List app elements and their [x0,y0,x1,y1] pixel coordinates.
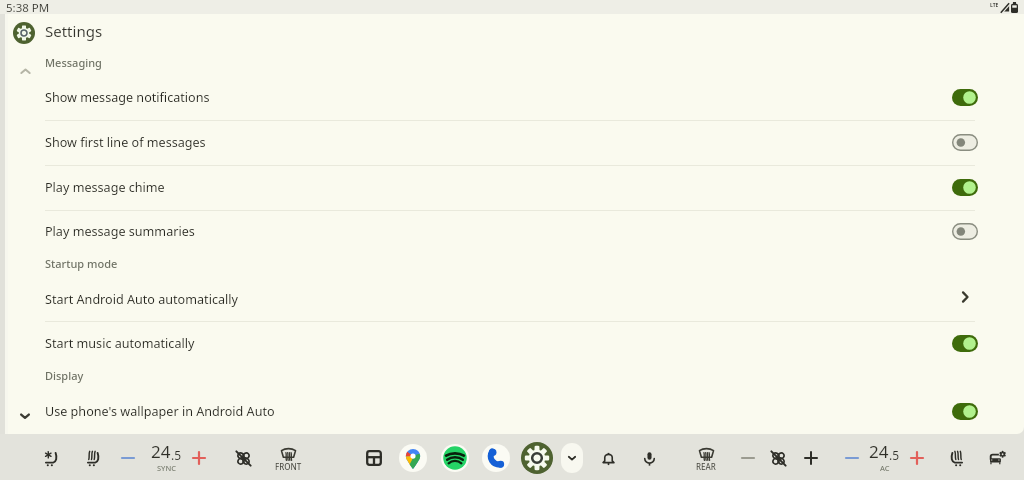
button[interactable]: Car settings [984,445,1010,471]
button[interactable]: Phone [482,444,510,472]
button[interactable]: Switch on [946,83,983,111]
staticText: Start music automatically [45,335,195,352]
staticText: 24 [151,440,171,463]
button[interactable]: Increase temperature left [181,445,217,471]
button[interactable]: Play message chime [0,167,1024,207]
button[interactable]: Defrost FRONT [271,443,305,475]
button[interactable]: Open [950,282,980,312]
staticText: Use phone's wallpaper in Android Auto [45,403,275,420]
button[interactable]: Seat cooling [37,445,63,471]
button[interactable]: Increase temperature right [899,445,935,471]
button[interactable]: Decrease fan [730,445,766,471]
button[interactable]: More apps [561,443,583,473]
staticText: Messaging [45,55,102,70]
staticText: Startup mode [45,256,118,271]
staticText: Play message summaries [45,223,195,240]
button[interactable]: Fan off left [230,445,256,471]
button[interactable]: Increase fan [793,445,829,471]
staticText: SYNC [157,463,177,473]
button[interactable]: Scroll up [15,61,35,81]
staticText: Start Android Auto automatically [45,291,238,308]
button[interactable]: Scroll down [15,406,35,426]
button[interactable]: Seat heating right [944,445,970,471]
staticText: .5 [171,447,182,463]
button[interactable]: Fan off right [765,445,791,471]
button[interactable]: Use phone's wallpaper in Android Auto [0,391,1024,431]
staticText: .5 [889,447,900,463]
staticText: REAR [696,461,716,472]
staticText: LTE [990,2,999,9]
button[interactable]: Maps [399,444,427,472]
button[interactable]: Switch off [946,128,983,156]
button[interactable]: Notifications [595,445,621,471]
staticText: Settings [45,21,103,41]
staticText: Show first line of messages [45,134,206,151]
staticText: 24 [869,440,889,463]
button[interactable]: 24 [144,440,188,476]
button[interactable]: Microphone [636,445,662,471]
staticText: AC [880,463,890,473]
staticText: 5:38 PM [6,0,50,14]
button[interactable]: Dashboard [348,445,400,471]
button[interactable]: Play message summaries [0,211,1024,251]
staticText: FRONT [275,461,302,472]
staticText: Play message chime [45,179,165,196]
button[interactable]: Show message notifications [0,77,1024,117]
button[interactable]: Decrease temperature right [834,445,870,471]
button[interactable]: 24 [862,440,906,476]
button[interactable]: Start music automatically [0,323,1024,363]
staticText: Display [45,368,84,383]
button[interactable]: Settings app icon [13,22,35,44]
button[interactable]: Decrease temperature left [110,445,146,471]
staticText: Show message notifications [45,89,210,106]
button[interactable]: Switch off [946,217,983,245]
button[interactable]: Seat heating [79,445,105,471]
button[interactable]: Show first line of messages [0,122,1024,162]
button[interactable]: Defrost REAR [689,443,723,475]
button[interactable]: Start Android Auto automatically [0,279,1024,319]
button[interactable]: Switch on [946,173,983,201]
button[interactable]: Switch on [946,329,983,357]
button[interactable]: Spotify [441,444,469,472]
button[interactable]: Switch on [946,397,983,425]
button[interactable]: Settings [521,442,553,474]
